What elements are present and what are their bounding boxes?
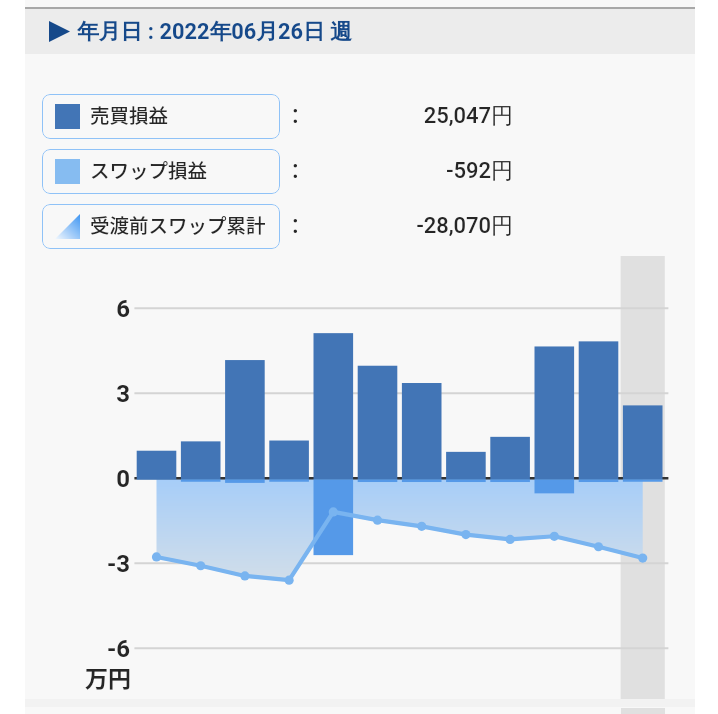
staticText: : — [292, 210, 299, 239]
button[interactable]: 売買損益 — [42, 94, 280, 139]
other: Expand — [49, 21, 70, 42]
button[interactable]: Expand — [25, 9, 695, 54]
staticText: -28,070円 — [299, 212, 513, 240]
staticText: 万円 — [85, 660, 131, 693]
staticText: -592円 — [299, 157, 513, 185]
staticText: 受渡前スワップ累計 — [90, 210, 266, 238]
staticText: スワップ損益 — [90, 155, 208, 183]
staticText: -6 — [68, 635, 130, 663]
staticText: : — [292, 155, 299, 184]
staticText: 売買損益 — [90, 100, 169, 128]
staticText: 25,047円 — [299, 102, 513, 130]
staticText: : — [292, 100, 299, 129]
button[interactable]: スワップ損益 — [42, 149, 280, 194]
staticText: 6 — [68, 295, 130, 323]
staticText: 0 — [68, 465, 130, 493]
staticText: 3 — [68, 380, 130, 408]
button[interactable]: 受渡前スワップ累計 — [42, 204, 280, 249]
staticText: -3 — [68, 550, 130, 578]
staticText: 年月日 : 2022年06月26日 週 — [77, 18, 353, 45]
